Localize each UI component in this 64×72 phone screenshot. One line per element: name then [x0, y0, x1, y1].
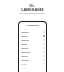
button[interactable]: Select language: [21, 30, 45, 34]
button[interactable]: Select language: [21, 62, 45, 66]
staticText: 30+: [29, 4, 35, 8]
button[interactable]: Select language: [21, 46, 45, 50]
button[interactable]: Select language: [21, 38, 45, 42]
button[interactable]: Select language: [21, 50, 45, 54]
button[interactable]: Select language: [21, 66, 45, 70]
button[interactable]: Select language: [21, 58, 45, 62]
staticText: Learn the language you love most: [19, 12, 45, 14]
button[interactable]: Selected language: [21, 34, 45, 38]
button[interactable]: Select language: [21, 54, 45, 58]
button[interactable]: Select language: [21, 42, 45, 46]
staticText: LANGUAGES: [21, 7, 44, 12]
